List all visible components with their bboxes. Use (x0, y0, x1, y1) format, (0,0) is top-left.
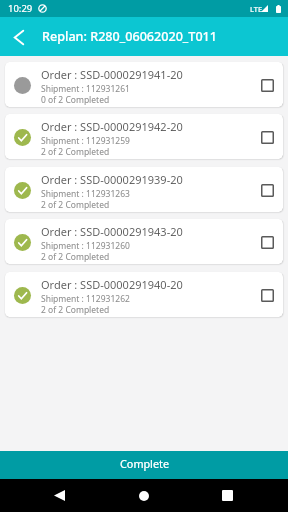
button[interactable]: Order : SSD-0000291940-20 (5, 272, 283, 317)
button[interactable]: Recents (211, 479, 244, 512)
staticText: Order : SSD-0000291940-20 (41, 277, 183, 292)
staticText: 2 of 2 Completed (41, 199, 110, 211)
button[interactable]: Select order (254, 177, 280, 203)
staticText: Shipment : 112931262 (41, 293, 130, 305)
button[interactable]: Order : SSD-0000291942-20 (5, 114, 283, 159)
button[interactable]: Back (43, 479, 76, 512)
button[interactable]: Order : SSD-0000291941-20 (5, 62, 283, 107)
staticText: 2 of 2 Completed (41, 146, 110, 158)
button[interactable]: Back (0, 19, 36, 55)
staticText: Complete (120, 456, 169, 471)
staticText: Order : SSD-0000291939-20 (41, 172, 183, 187)
staticText: Order : SSD-0000291942-20 (41, 119, 183, 134)
staticText: 0 of 2 Completed (41, 94, 110, 106)
staticText: 2 of 2 Completed (41, 251, 110, 263)
staticText: 2 of 2 Completed (41, 304, 110, 316)
staticText: Shipment : 112931259 (41, 135, 130, 147)
staticText: LTE (250, 4, 263, 14)
button[interactable]: Select order (254, 282, 280, 308)
staticText: Order : SSD-0000291943-20 (41, 224, 183, 239)
button[interactable]: Select order (254, 124, 280, 150)
staticText: Order : SSD-0000291941-20 (41, 67, 183, 82)
button[interactable]: Select order (254, 229, 280, 255)
button[interactable]: Order : SSD-0000291939-20 (5, 167, 283, 212)
button[interactable]: Home (127, 479, 160, 512)
staticText: Shipment : 112931263 (41, 188, 130, 200)
staticText: Shipment : 112931260 (41, 240, 130, 252)
button[interactable]: Complete (0, 451, 288, 479)
staticText: 10:29 (8, 2, 33, 15)
button[interactable]: Order : SSD-0000291943-20 (5, 219, 283, 264)
staticText: Shipment : 112931261 (41, 83, 130, 95)
button[interactable]: Select order (254, 72, 280, 98)
staticText: Replan: R280_06062020_T011 (42, 28, 218, 45)
